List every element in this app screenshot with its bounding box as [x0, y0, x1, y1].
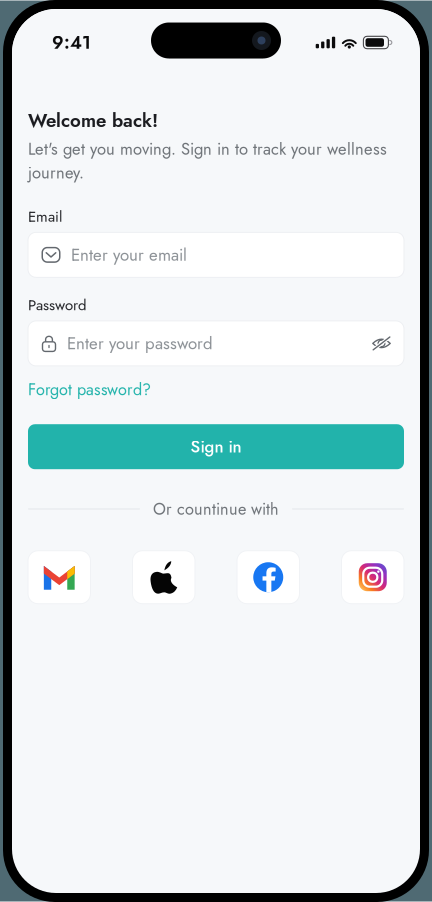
staticText: Enter your password	[67, 331, 213, 356]
staticText: Or countinue with	[153, 497, 279, 521]
staticText: Forgot password?	[28, 378, 151, 401]
button[interactable]: Show password	[372, 336, 391, 350]
button[interactable]: Forgot password?	[12, 374, 159, 405]
button[interactable]: Sign in with Facebook	[237, 551, 299, 604]
button[interactable]: Sign in with Instagram	[341, 551, 404, 604]
staticText: Let's get you moving. Sign in to track y…	[28, 137, 387, 185]
staticText: Enter your email	[71, 243, 187, 267]
staticText: Email	[28, 206, 62, 227]
staticText: 9:41	[52, 29, 91, 56]
button[interactable]: Sign in	[12, 424, 404, 469]
staticText: Password	[28, 294, 87, 316]
staticText: Welcome back!	[28, 107, 158, 134]
button[interactable]: Sign in with Apple	[132, 551, 195, 604]
staticText: Sign in	[190, 435, 241, 459]
button[interactable]: Sign in with Google	[28, 551, 90, 604]
